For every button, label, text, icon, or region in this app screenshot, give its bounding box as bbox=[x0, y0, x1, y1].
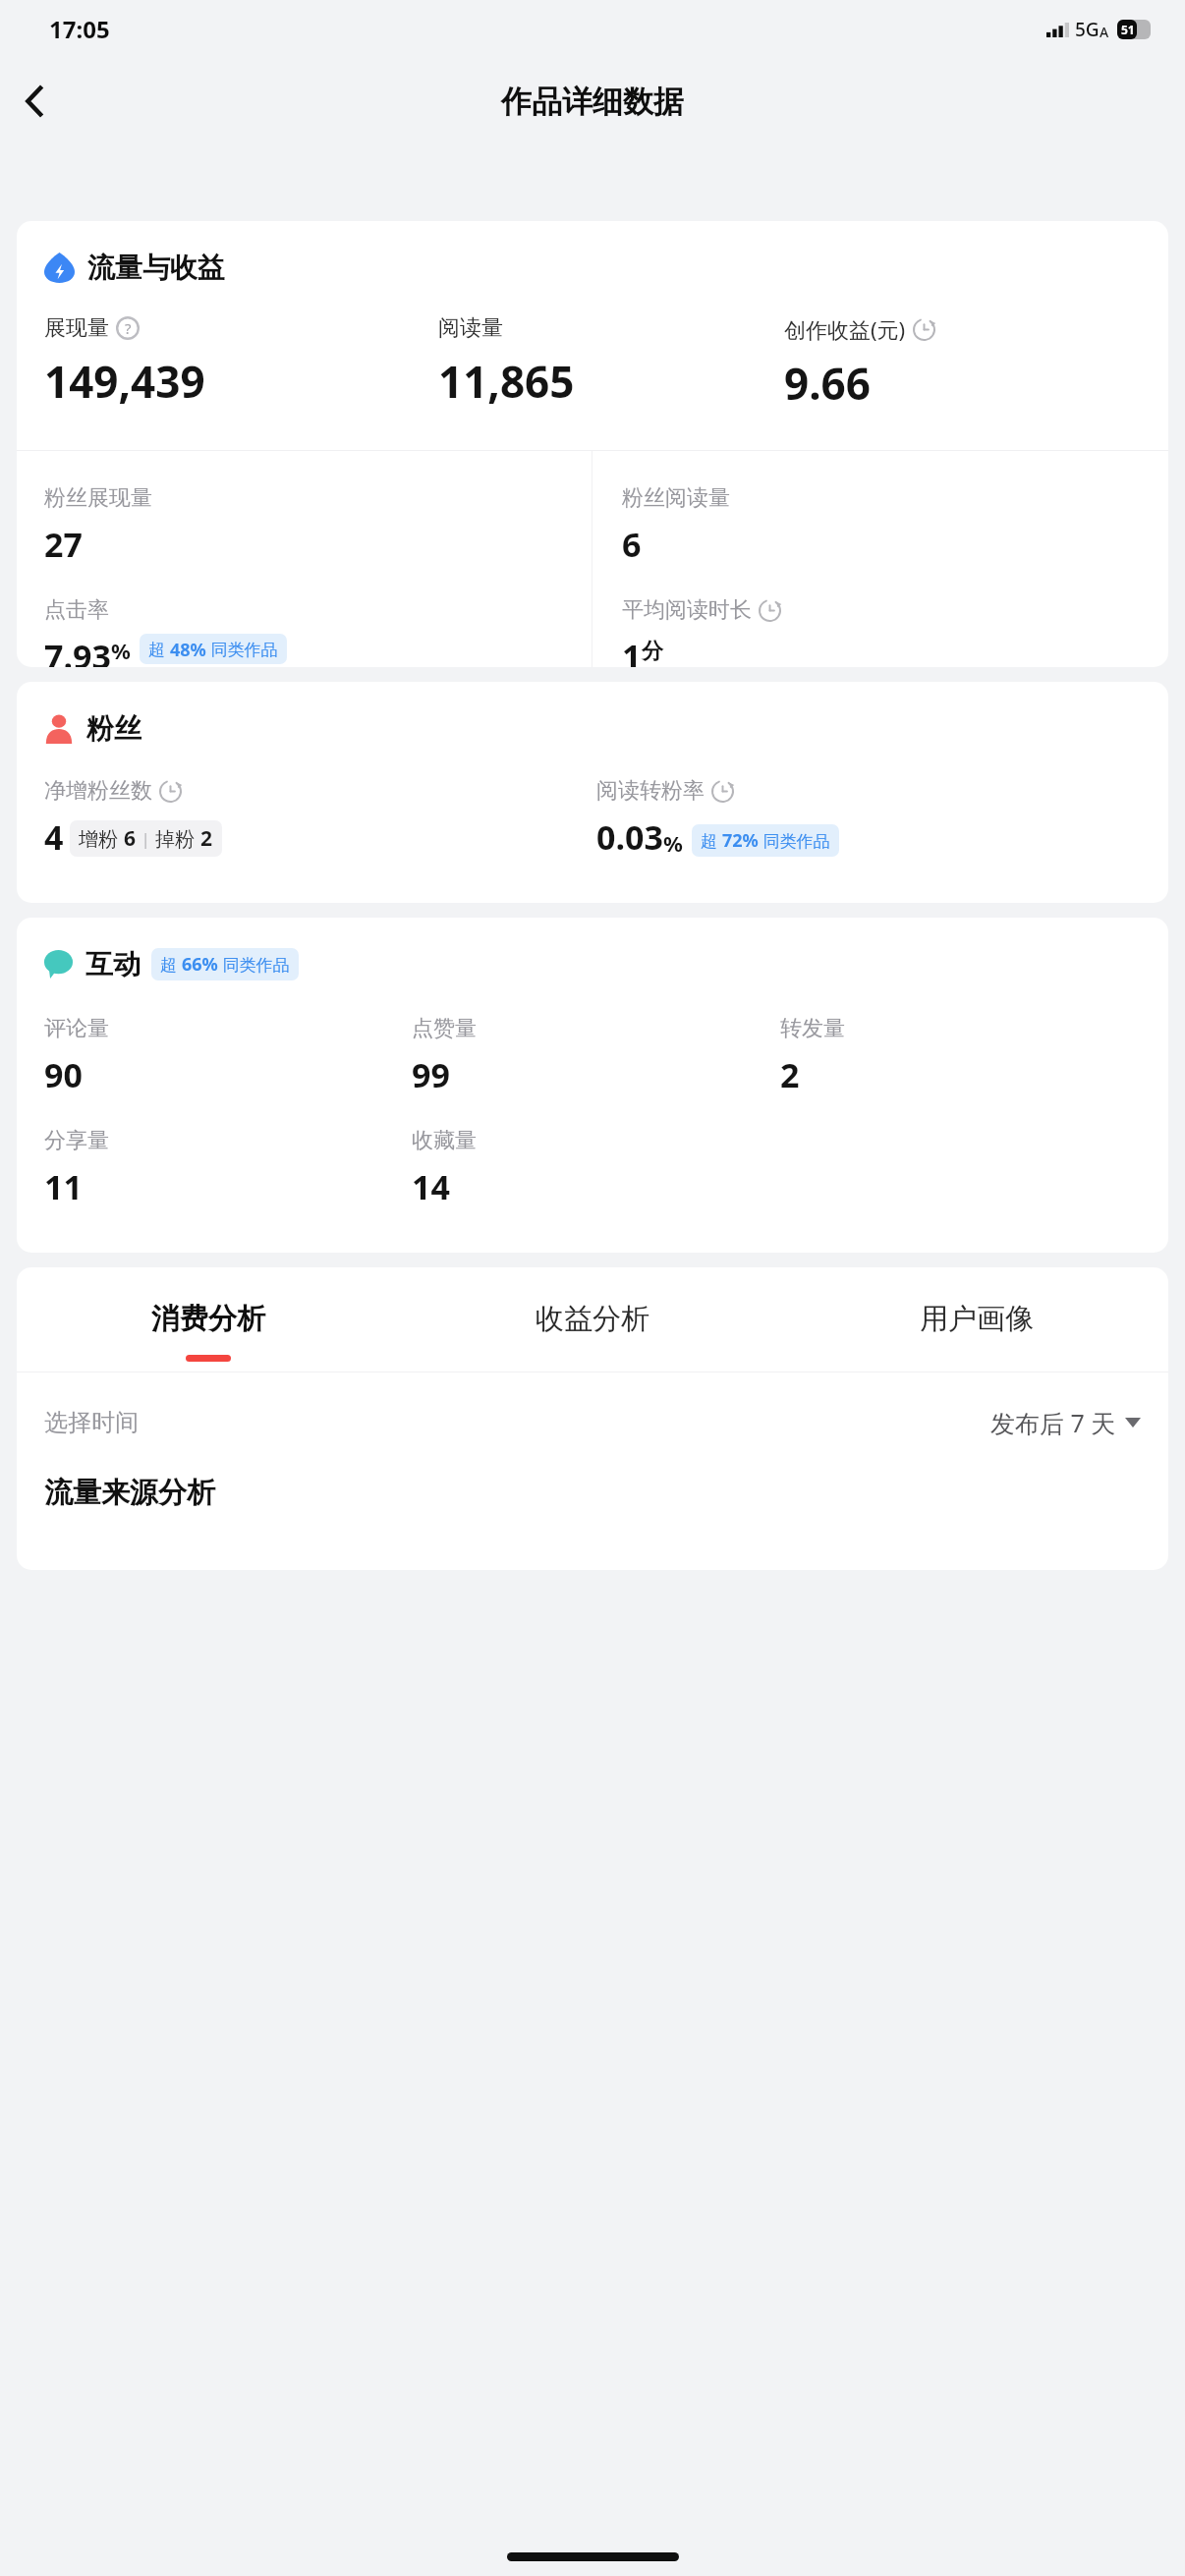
staticText: 阅读量 bbox=[438, 314, 503, 342]
staticText: 阅读转粉率 bbox=[596, 777, 705, 805]
staticText: 作品详细数据 bbox=[501, 83, 684, 121]
staticText: 99 bbox=[412, 1052, 450, 1097]
staticText: 27 bbox=[44, 522, 83, 567]
staticText: 掉粉 bbox=[155, 825, 200, 852]
staticText: 2 bbox=[200, 824, 213, 853]
staticText: 同类作品 bbox=[206, 638, 278, 660]
button[interactable]: 发布后 7 天 bbox=[990, 1406, 1141, 1439]
staticText: 分享量 bbox=[44, 1127, 109, 1154]
staticText: 5G bbox=[1075, 17, 1100, 42]
staticText: ? bbox=[125, 318, 132, 338]
staticText: 9.66 bbox=[784, 354, 871, 413]
staticText: 收藏量 bbox=[412, 1127, 477, 1154]
staticText: | bbox=[137, 827, 155, 850]
staticText: 转发量 bbox=[780, 1015, 845, 1042]
staticText: 7.93 bbox=[44, 634, 111, 667]
staticText: 选择时间 bbox=[44, 1408, 139, 1437]
staticText: 同类作品 bbox=[759, 829, 830, 852]
button[interactable]: 超 bbox=[148, 638, 278, 660]
staticText: 6 bbox=[124, 824, 137, 853]
staticText: 增粉 bbox=[79, 825, 124, 852]
staticText: 消费分析 bbox=[151, 1301, 265, 1337]
staticText: 平均阅读时长 bbox=[622, 596, 752, 624]
staticText: 72% bbox=[722, 828, 759, 853]
staticText: 粉丝展现量 bbox=[44, 484, 152, 512]
staticText: 点击率 bbox=[44, 596, 109, 624]
button[interactable]: 收益分析 bbox=[400, 1301, 784, 1372]
staticText: 同类作品 bbox=[218, 953, 290, 976]
staticText: 分 bbox=[642, 638, 663, 665]
staticText: 流量与收益 bbox=[87, 251, 225, 285]
staticText: 创作收益(元) bbox=[784, 314, 906, 344]
staticText: 净增粉丝数 bbox=[44, 777, 152, 805]
button[interactable]: Back bbox=[6, 73, 63, 130]
staticText: 展现量 bbox=[44, 314, 109, 342]
staticText: 用户画像 bbox=[920, 1301, 1034, 1337]
staticText: 粉丝 bbox=[86, 711, 141, 746]
button[interactable]: 超 bbox=[701, 828, 830, 853]
staticText: 1 bbox=[622, 634, 642, 667]
staticText: 2 bbox=[780, 1052, 800, 1097]
staticText: 超 bbox=[701, 829, 722, 852]
staticText: 评论量 bbox=[44, 1015, 109, 1042]
staticText: 48% bbox=[170, 638, 206, 660]
staticText: 收益分析 bbox=[536, 1301, 649, 1337]
staticText: 66% bbox=[182, 952, 218, 977]
button[interactable]: 超 bbox=[160, 952, 290, 977]
staticText: 6 bbox=[622, 522, 642, 567]
staticText: 14 bbox=[412, 1164, 450, 1209]
staticText: 流量来源分析 bbox=[44, 1475, 215, 1511]
staticText: 11,865 bbox=[438, 352, 575, 411]
staticText: 149,439 bbox=[44, 352, 205, 411]
button[interactable]: 消费分析 bbox=[17, 1301, 400, 1372]
staticText: A bbox=[1100, 23, 1109, 41]
staticText: 点赞量 bbox=[412, 1015, 477, 1042]
staticText: 超 bbox=[148, 638, 170, 660]
button[interactable]: 增粉 bbox=[79, 824, 213, 853]
staticText: 4 bbox=[44, 814, 64, 860]
staticText: % bbox=[111, 636, 131, 665]
staticText: % bbox=[663, 828, 683, 858]
staticText: 11 bbox=[44, 1164, 83, 1209]
staticText: 0.03 bbox=[596, 814, 663, 860]
staticText: 超 bbox=[160, 953, 182, 976]
staticText: 发布后 7 天 bbox=[990, 1406, 1116, 1439]
button[interactable]: 用户画像 bbox=[784, 1301, 1168, 1372]
staticText: 90 bbox=[44, 1052, 83, 1097]
staticText: 51 bbox=[1121, 22, 1135, 37]
staticText: 粉丝阅读量 bbox=[622, 484, 730, 512]
staticText: 17:05 bbox=[49, 13, 110, 45]
staticText: 互动 bbox=[85, 947, 141, 981]
